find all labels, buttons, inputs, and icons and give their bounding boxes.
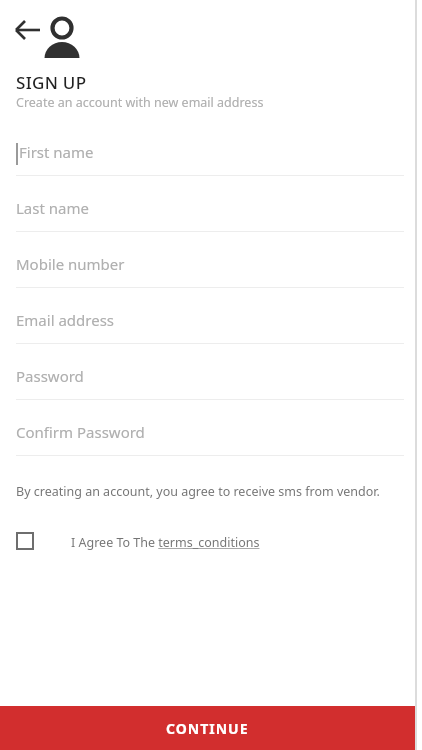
staticText: SIGN UP — [16, 71, 87, 94]
other: Account — [40, 8, 84, 62]
button[interactable]: Password — [16, 366, 404, 400]
button[interactable]: Confirm Password — [16, 422, 404, 456]
staticText: Password — [16, 366, 84, 386]
button[interactable]: Back — [10, 16, 46, 44]
staticText: Confirm Password — [16, 422, 145, 442]
staticText: Last name — [16, 198, 89, 218]
button[interactable]: CONTINUE — [0, 706, 415, 750]
button[interactable]: Email address — [16, 310, 404, 344]
button[interactable]: I agree to the terms and conditions — [10, 526, 40, 556]
staticText: Create an account with new email address — [16, 94, 264, 111]
staticText: By creating an account, you agree to rec… — [16, 483, 380, 500]
button[interactable]: First name — [16, 142, 404, 176]
button[interactable]: Last name — [16, 198, 404, 232]
button[interactable]: Mobile number — [16, 254, 404, 288]
button[interactable]: I Agree To The terms_conditions — [71, 534, 260, 551]
staticText: Mobile number — [16, 254, 125, 274]
staticText: I Agree To The terms_conditions — [71, 534, 260, 551]
staticText: Email address — [16, 310, 115, 330]
staticText: CONTINUE — [166, 719, 249, 738]
staticText: First name — [19, 142, 94, 162]
